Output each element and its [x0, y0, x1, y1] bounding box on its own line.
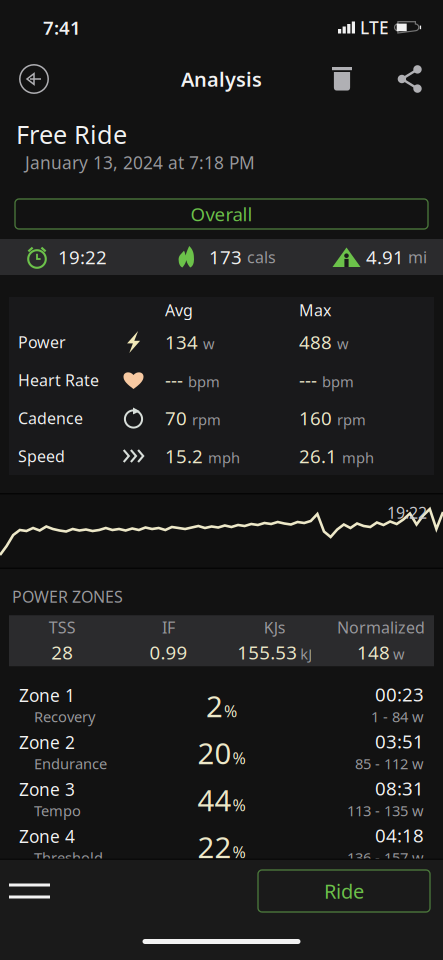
- staticText: Normalized: [337, 617, 425, 638]
- staticText: bpm: [188, 372, 220, 391]
- button[interactable]: Back: [10, 57, 58, 101]
- staticText: 15.2: [165, 444, 203, 468]
- staticText: Overall: [190, 202, 252, 226]
- staticText: Zone 4: [19, 825, 75, 848]
- staticText: 7:41: [43, 15, 81, 40]
- staticText: %: [224, 700, 237, 721]
- staticText: 19:22: [387, 502, 427, 523]
- staticText: w: [337, 334, 349, 353]
- staticText: 26.1: [299, 444, 337, 468]
- staticText: 22: [197, 827, 231, 866]
- staticText: January 13, 2024 at 7:18 PM: [25, 151, 255, 174]
- staticText: w: [203, 334, 215, 353]
- staticText: Speed: [18, 445, 65, 467]
- staticText: 488: [299, 330, 332, 354]
- staticText: Heart Rate: [18, 369, 99, 391]
- staticText: LTE: [360, 16, 389, 39]
- staticText: 173: [209, 245, 242, 269]
- button[interactable]: Share: [386, 57, 434, 101]
- staticText: cals: [247, 246, 276, 268]
- staticText: 00:23: [375, 682, 424, 707]
- staticText: Zone 2: [19, 731, 75, 754]
- button[interactable]: Menu: [0, 869, 69, 913]
- staticText: %: [232, 794, 245, 815]
- staticText: POWER ZONES: [12, 586, 123, 607]
- staticText: mph: [208, 448, 240, 467]
- staticText: Avg: [165, 299, 193, 321]
- staticText: rpm: [337, 410, 366, 429]
- staticText: 4.91: [366, 245, 404, 269]
- staticText: Power: [18, 331, 66, 353]
- staticText: 0.99: [149, 640, 187, 665]
- staticText: Tempo: [34, 801, 81, 820]
- staticText: 28: [51, 640, 73, 665]
- staticText: mph: [342, 448, 374, 467]
- staticText: 2: [206, 686, 223, 725]
- staticText: 1 - 84 w: [371, 707, 424, 726]
- staticText: 113 - 135 w: [347, 801, 424, 820]
- staticText: ---: [165, 368, 183, 392]
- staticText: Ride: [324, 878, 364, 904]
- staticText: 20: [197, 733, 231, 772]
- staticText: 160: [299, 406, 332, 430]
- staticText: mi: [408, 246, 427, 268]
- staticText: 04:18: [375, 823, 424, 848]
- staticText: 148: [357, 640, 390, 665]
- staticText: Zone 3: [19, 778, 75, 801]
- staticText: %: [232, 747, 245, 768]
- staticText: Cadence: [18, 407, 83, 429]
- staticText: IF: [162, 617, 175, 638]
- button[interactable]: Ride: [258, 870, 430, 912]
- staticText: ---: [299, 368, 317, 392]
- staticText: 03:51: [375, 729, 424, 754]
- staticText: 19:22: [58, 245, 107, 269]
- button[interactable]: Delete: [318, 57, 366, 101]
- staticText: Free Ride: [16, 117, 127, 151]
- staticText: TSS: [49, 617, 76, 638]
- staticText: 44: [197, 780, 231, 819]
- staticText: Threshold: [34, 848, 103, 867]
- staticText: 155.53: [237, 640, 297, 665]
- button[interactable]: Overall: [15, 199, 428, 229]
- staticText: %: [232, 841, 245, 862]
- staticText: Zone 1: [19, 684, 75, 707]
- staticText: KJs: [264, 617, 286, 638]
- staticText: 70: [165, 406, 187, 430]
- staticText: 134: [165, 330, 198, 354]
- staticText: kJ: [300, 644, 312, 664]
- staticText: Max: [299, 299, 331, 321]
- staticText: 136 - 157 w: [347, 848, 424, 867]
- staticText: Recovery: [34, 707, 95, 726]
- staticText: 85 - 112 w: [355, 754, 424, 773]
- staticText: rpm: [192, 410, 221, 429]
- staticText: 08:31: [375, 776, 424, 801]
- staticText: bpm: [322, 372, 354, 391]
- staticText: Endurance: [34, 754, 107, 773]
- staticText: Analysis: [181, 66, 262, 92]
- staticText: w: [393, 644, 405, 664]
